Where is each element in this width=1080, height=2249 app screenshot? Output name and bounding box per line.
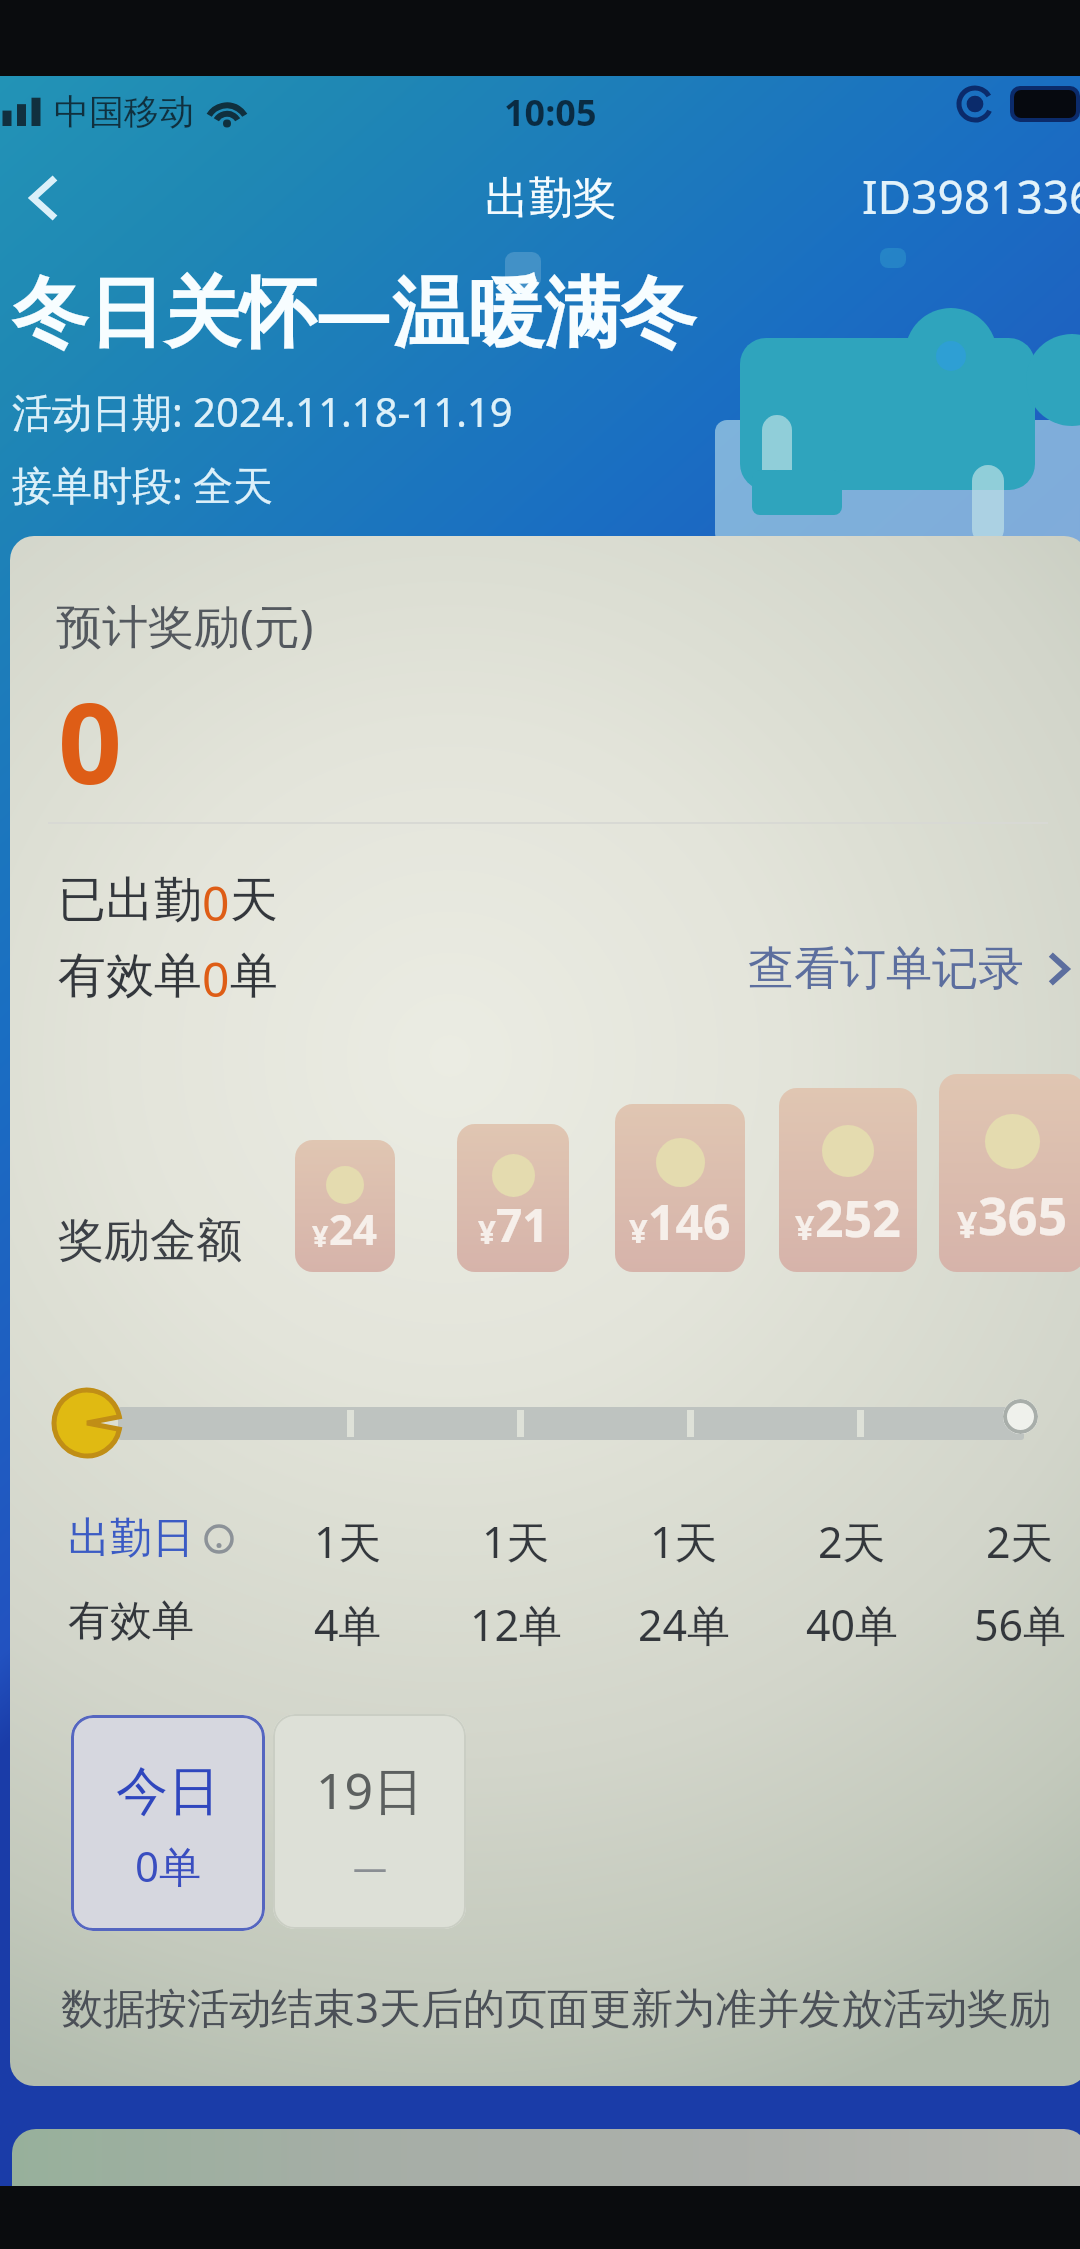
button[interactable]: Back: [0, 153, 90, 243]
staticText: 10:05: [504, 88, 597, 137]
staticText: 冬日关怀—温暖满冬: [12, 258, 696, 362]
staticText: ID3981336: [862, 165, 1080, 228]
staticText: 19日: [316, 1756, 424, 1824]
staticText: ¥: [957, 1200, 978, 1248]
staticText: 接单时段: 全天: [12, 457, 274, 512]
staticText: 查看订单记录: [748, 940, 1024, 998]
button[interactable]: 今日: [71, 1715, 265, 1931]
staticText: 活动日期: 2024.11.18-11.19: [12, 384, 513, 439]
staticText: 2天: [818, 1512, 886, 1571]
button[interactable]: 查看订单记录: [748, 940, 1076, 998]
staticText: 预计奖励(元): [56, 594, 314, 657]
staticText: 71: [496, 1193, 549, 1256]
staticText: 今日: [116, 1759, 220, 1825]
staticText: 天: [230, 870, 278, 930]
staticText: 252: [815, 1184, 901, 1252]
staticText: ¥: [795, 1204, 815, 1250]
staticText: 有效单: [58, 946, 202, 1006]
staticText: 4单: [314, 1595, 382, 1654]
staticText: 1天: [314, 1512, 382, 1571]
staticText: —: [353, 1844, 387, 1890]
staticText: 146: [648, 1189, 731, 1254]
staticText: 56单: [974, 1595, 1067, 1654]
staticText: 已出勤: [58, 870, 202, 930]
staticText: 数据按活动结束3天后的页面更新为准并发放活动奖励: [16, 1978, 1080, 2035]
staticText: 单: [230, 946, 278, 1006]
staticText: 40单: [806, 1595, 899, 1654]
staticText: 有效单: [68, 1595, 194, 1648]
staticText: 0单: [135, 1837, 202, 1894]
staticText: 24: [329, 1200, 378, 1257]
staticText: 1天: [482, 1512, 550, 1571]
staticText: 0: [202, 946, 230, 1011]
staticText: 1天: [650, 1512, 718, 1571]
staticText: 中国移动: [54, 90, 194, 134]
staticText: ¥: [312, 1216, 329, 1255]
staticText: 2天: [986, 1512, 1054, 1571]
staticText: 0: [58, 664, 123, 817]
staticText: 奖励金额: [58, 1212, 242, 1270]
button[interactable]: 19日: [273, 1714, 466, 1929]
staticText: 出勤日: [68, 1512, 194, 1565]
staticText: 出勤奖: [485, 171, 617, 226]
staticText: 24单: [638, 1595, 731, 1654]
staticText: 0: [202, 870, 230, 935]
staticText: ¥: [629, 1208, 648, 1252]
staticText: 12单: [470, 1595, 563, 1654]
staticText: ¥: [478, 1211, 496, 1254]
staticText: 365: [978, 1179, 1068, 1250]
